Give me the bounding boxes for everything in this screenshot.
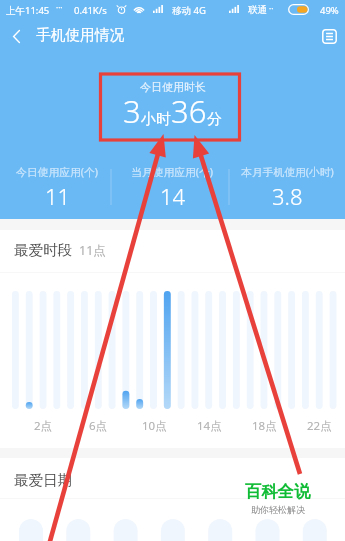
- staticText: 移动 4G: [172, 4, 206, 17]
- staticText: 本月手机使用(小时): [241, 164, 334, 179]
- staticText: 14点: [197, 418, 222, 434]
- staticText: 百科全说: [245, 481, 311, 502]
- staticText: 36: [171, 90, 207, 132]
- staticText: 上午11:45: [6, 4, 50, 17]
- staticText: ···: [56, 2, 63, 13]
- staticText: 最爱时段: [14, 241, 73, 259]
- staticText: 11: [45, 181, 71, 209]
- staticText: 0.41K/s: [74, 4, 107, 17]
- staticText: 今日使用时长: [140, 80, 206, 94]
- button[interactable]: 当月使用应用(个): [115, 164, 230, 209]
- staticText: 分: [207, 110, 222, 129]
- staticText: 3: [123, 90, 141, 132]
- button[interactable]: Back: [0, 20, 32, 52]
- staticText: 11点: [79, 242, 106, 259]
- staticText: 最爱日期: [14, 471, 73, 489]
- button[interactable]: Report list: [313, 20, 345, 52]
- staticText: 18点: [252, 418, 277, 434]
- button[interactable]: 本月手机使用(小时): [230, 164, 345, 209]
- staticText: 22点: [307, 418, 332, 434]
- staticText: 14: [160, 181, 186, 209]
- staticText: 当月使用应用(个): [131, 164, 214, 179]
- staticText: 49%: [320, 4, 339, 17]
- staticText: 助你轻松解决: [251, 504, 305, 515]
- staticText: 手机使用情况: [36, 26, 125, 45]
- staticText: 6点: [89, 418, 108, 434]
- staticText: ··: [269, 3, 274, 14]
- staticText: 3.8: [272, 181, 303, 209]
- button[interactable]: 今日使用应用(个): [0, 164, 115, 209]
- staticText: 10点: [142, 418, 167, 434]
- staticText: 小时: [141, 110, 171, 129]
- staticText: 今日使用应用(个): [16, 164, 99, 179]
- staticText: 联通: [248, 4, 267, 16]
- staticText: 2点: [34, 418, 53, 434]
